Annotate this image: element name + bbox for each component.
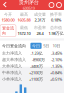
staticText: 1572.10 [17, 31, 30, 36]
button[interactable]: 10日 [51, 43, 62, 49]
staticText: 今开 [4, 12, 12, 17]
staticText: 小单净流入 [2, 77, 22, 82]
button[interactable]: Search [47, 2, 55, 7]
staticText: 贵州茅台 [19, 0, 39, 6]
staticText: 市盈率 [34, 25, 46, 30]
staticText: 今日 [32, 43, 40, 48]
button[interactable]: 5日 [42, 43, 51, 49]
staticText: +0.84% [50, 70, 62, 75]
staticText: 今日资金流向 [2, 43, 26, 48]
staticText: 主力净流入 [2, 51, 22, 56]
button[interactable]: More [55, 2, 64, 7]
staticText: 大单净流入 [2, 64, 22, 69]
staticText: 28.4 [36, 31, 43, 36]
button[interactable]: 今日 [30, 43, 42, 49]
staticText: 1.98万亿 [48, 31, 63, 36]
staticText: 最低 [20, 25, 28, 30]
button[interactable]: 资金流向 [0, 25, 16, 36]
staticText: 1580.00 [1, 17, 14, 23]
staticText: 2.31万 [34, 17, 45, 23]
staticText: 总市值 [50, 25, 62, 30]
staticText: 1605.88 [17, 17, 30, 23]
staticText: 成交量 [34, 12, 46, 17]
staticText: 换手率 [50, 12, 62, 17]
staticText: 10日 [52, 43, 60, 48]
staticText: -3400万 [30, 64, 43, 69]
staticText: 600519 [23, 6, 35, 11]
staticText: 超大单净流入 [2, 57, 26, 62]
staticText: +2100万 [29, 70, 43, 75]
staticText: -2.10% [51, 57, 62, 62]
button[interactable]: Back [0, 1, 10, 9]
staticText: +0.51% [50, 77, 62, 82]
staticText: 最高 [20, 12, 28, 17]
staticText: +1100万 [29, 77, 43, 82]
staticText: -1.35% [51, 64, 62, 69]
staticText: 资金流向 [2, 26, 14, 35]
staticText: -1.23亿 [30, 51, 42, 56]
staticText: 5日 [43, 43, 49, 48]
staticText: 中单净流入 [2, 70, 22, 75]
staticText: 0.18% [51, 17, 61, 23]
staticText: -8900万 [32, 57, 45, 62]
staticText: -3.45% [51, 51, 62, 56]
